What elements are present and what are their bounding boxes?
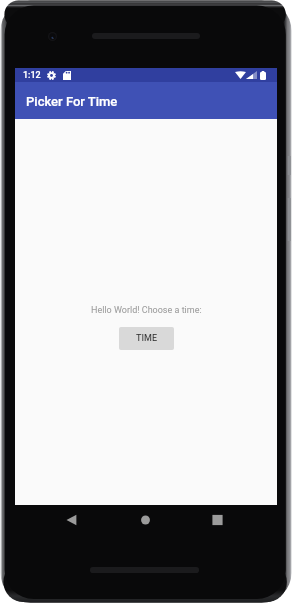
button[interactable]: Back xyxy=(58,510,85,530)
button[interactable]: Home xyxy=(132,510,159,530)
staticText: TIME xyxy=(136,333,157,344)
button[interactable]: TIME xyxy=(119,327,174,350)
staticText: Picker For Time xyxy=(26,94,118,109)
staticText: 1:12 xyxy=(23,70,41,81)
staticText: Hello World! Choose a time: xyxy=(91,305,202,316)
button[interactable]: Recent apps xyxy=(204,510,231,530)
